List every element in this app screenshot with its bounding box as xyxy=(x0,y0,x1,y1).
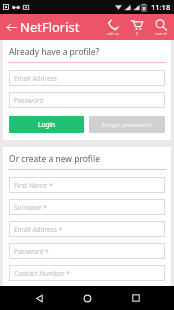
button[interactable]: Password * xyxy=(9,243,165,259)
staticText: Email Address xyxy=(14,74,57,83)
button[interactable]: Contact Number * xyxy=(9,265,165,281)
staticText: Password * xyxy=(14,247,49,256)
staticText: call us xyxy=(103,31,123,36)
staticText: search xyxy=(151,31,171,36)
button[interactable]: Search xyxy=(151,19,171,36)
staticText: Surname * xyxy=(14,203,47,212)
staticText: Already have a profile? xyxy=(9,46,100,58)
staticText: Login xyxy=(38,120,56,129)
staticText: Contact Number * xyxy=(14,269,70,278)
button[interactable]: Call us xyxy=(103,19,123,36)
staticText: First Name * xyxy=(14,181,53,190)
button[interactable]: Back xyxy=(29,288,49,308)
staticText: Email Address * xyxy=(14,225,63,234)
staticText: 11:18 xyxy=(151,2,171,12)
button[interactable]: Email Address xyxy=(9,70,165,86)
staticText: NetFlorist xyxy=(20,18,80,36)
button[interactable]: Cart xyxy=(127,19,147,36)
button[interactable]: Login xyxy=(9,116,84,133)
button[interactable]: Surname * xyxy=(9,199,165,215)
staticText: Or create a new profile xyxy=(9,153,100,165)
staticText: Forgot password? xyxy=(102,121,153,129)
button[interactable]: Password xyxy=(9,92,165,108)
button[interactable]: Home xyxy=(77,288,97,308)
staticText: 0 xyxy=(127,31,147,36)
button[interactable]: Email Address * xyxy=(9,221,165,237)
button[interactable]: Recent apps xyxy=(126,288,146,308)
staticText: Password xyxy=(14,96,44,105)
button[interactable]: Back xyxy=(3,19,19,35)
button[interactable]: Forgot password? xyxy=(89,116,165,133)
button[interactable]: First Name * xyxy=(9,177,165,193)
